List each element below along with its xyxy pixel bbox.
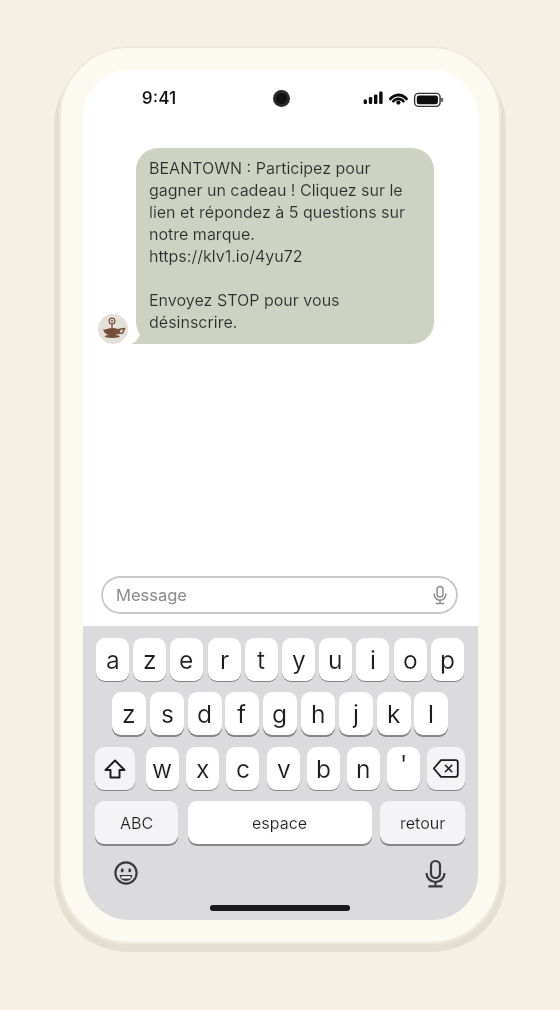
button[interactable]: k <box>377 692 411 735</box>
staticText: e <box>179 645 194 675</box>
button[interactable]: w <box>146 747 179 790</box>
button[interactable]: p <box>431 638 464 681</box>
staticText: t <box>257 645 266 675</box>
staticText: o <box>403 645 418 675</box>
button[interactable]: s <box>150 692 184 735</box>
button[interactable] <box>114 861 138 885</box>
button[interactable]: d <box>188 692 222 735</box>
staticText: l <box>428 699 434 729</box>
button[interactable]: l <box>414 692 448 735</box>
button[interactable]: r <box>208 638 241 681</box>
button[interactable]: ABC <box>95 801 178 844</box>
staticText: espace <box>252 813 308 832</box>
button[interactable] <box>424 860 447 888</box>
staticText: c <box>236 754 250 784</box>
staticText: i <box>370 645 376 675</box>
staticText: x <box>196 754 210 784</box>
button[interactable] <box>95 747 135 790</box>
button[interactable]: x <box>186 747 219 790</box>
staticText: n <box>356 754 371 784</box>
staticText: z <box>122 699 136 729</box>
staticText: h <box>311 699 326 729</box>
staticText: r <box>220 645 230 675</box>
button[interactable]: b <box>307 747 340 790</box>
staticText: b <box>316 754 332 784</box>
staticText: BEANTOWN : Participez pour gagner un cad… <box>149 158 406 331</box>
staticText: p <box>440 645 456 675</box>
staticText: a <box>106 645 120 675</box>
staticText: 9:41 <box>134 88 184 109</box>
button[interactable]: Message <box>101 576 458 614</box>
staticText: v <box>277 754 291 784</box>
button[interactable]: espace <box>188 801 372 844</box>
staticText: j <box>353 699 359 729</box>
button[interactable] <box>427 747 465 790</box>
button[interactable]: t <box>245 638 278 681</box>
staticText: ' <box>400 749 408 779</box>
staticText: d <box>197 699 213 729</box>
button[interactable]: ' <box>387 747 420 790</box>
staticText: Message <box>116 585 187 605</box>
staticText: y <box>292 645 306 675</box>
staticText: z <box>143 645 157 675</box>
button[interactable]: e <box>170 638 203 681</box>
staticText: s <box>161 699 174 729</box>
button[interactable]: a <box>96 638 129 681</box>
button[interactable]: c <box>226 747 259 790</box>
button[interactable]: z <box>112 692 146 735</box>
button[interactable]: BEANTOWN : Participez pour gagner un cad… <box>136 148 434 344</box>
staticText: k <box>387 699 401 729</box>
button[interactable]: z <box>133 638 166 681</box>
button[interactable]: j <box>339 692 373 735</box>
button[interactable]: h <box>301 692 335 735</box>
button[interactable]: v <box>267 747 300 790</box>
button[interactable]: g <box>263 692 297 735</box>
button[interactable]: n <box>347 747 380 790</box>
button[interactable]: f <box>225 692 259 735</box>
staticText: w <box>152 754 173 784</box>
button[interactable]: o <box>394 638 427 681</box>
button[interactable]: u <box>319 638 352 681</box>
staticText: g <box>272 699 288 729</box>
staticText: ABC <box>120 813 154 832</box>
button[interactable]: y <box>282 638 315 681</box>
staticText: f <box>237 699 247 729</box>
staticText: retour <box>400 813 446 832</box>
button[interactable]: retour <box>380 801 465 844</box>
button[interactable]: i <box>356 638 389 681</box>
staticText: u <box>328 645 343 675</box>
